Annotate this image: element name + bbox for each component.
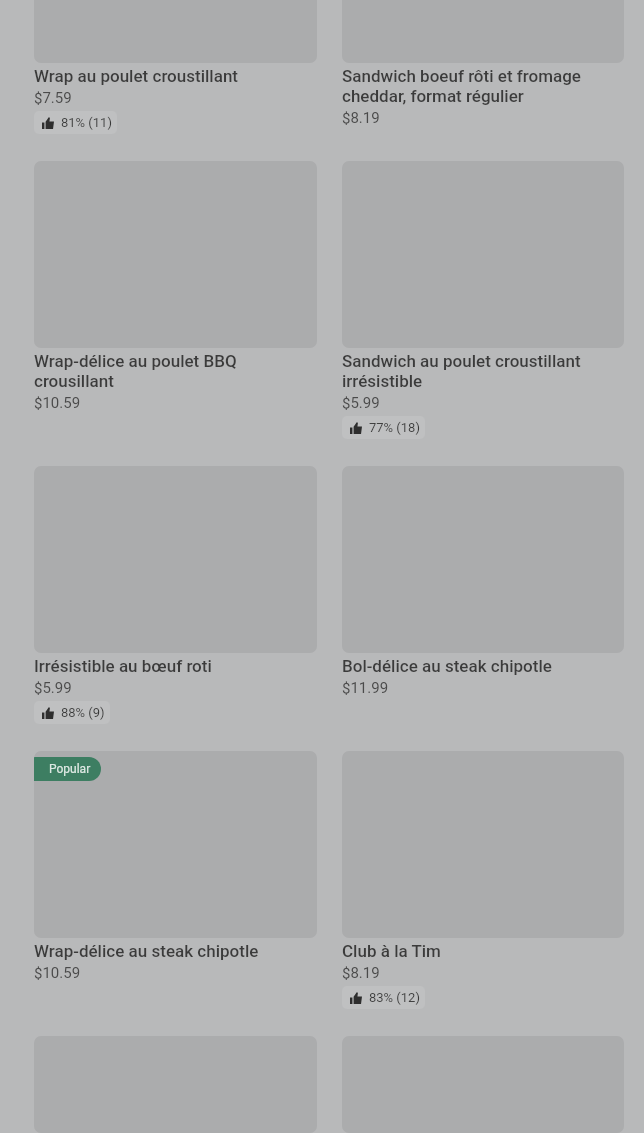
button[interactable]: 83% (12) — [342, 986, 425, 1009]
staticText: Club à la Tim — [342, 941, 441, 961]
staticText: $7.59 — [34, 89, 72, 107]
staticText: Sandwich au poulet croustillant irrésist… — [342, 351, 624, 391]
button[interactable]: Irrésistible au bœuf roti — [34, 466, 317, 724]
button[interactable]: Popular — [34, 757, 101, 781]
button[interactable]: 88% (9) — [34, 701, 110, 724]
staticText: Wrap-délice au poulet BBQ crousillant — [34, 351, 317, 391]
staticText: $10.59 — [34, 394, 81, 412]
button[interactable]: Wrap au poulet croustillant — [34, 0, 317, 134]
staticText: Popular — [49, 762, 91, 776]
staticText: Bol-délice au steak chipotle — [342, 656, 552, 676]
staticText: Irrésistible au bœuf roti — [34, 656, 212, 676]
button[interactable]: Sandwich boeuf rôti et fromage cheddar, … — [342, 0, 624, 127]
button[interactable]: Wrap-délice au poulet BBQ crousillant — [34, 161, 317, 412]
button[interactable]: Club à la Tim — [342, 751, 624, 1009]
button[interactable]: Sandwich au poulet croustillant irrésist… — [342, 161, 624, 439]
staticText: Sandwich boeuf rôti et fromage cheddar, … — [342, 66, 624, 106]
staticText: 81% (11) — [61, 115, 112, 130]
staticText: 77% (18) — [369, 420, 420, 435]
staticText: $8.19 — [342, 964, 380, 982]
button[interactable]: Bol-délice au steak chipotle — [342, 466, 624, 697]
staticText: 83% (12) — [369, 990, 420, 1005]
staticText: Wrap-délice au steak chipotle — [34, 941, 259, 961]
staticText: $11.99 — [342, 679, 389, 697]
staticText: $8.19 — [342, 109, 380, 127]
staticText: Wrap au poulet croustillant — [34, 66, 238, 86]
button[interactable]: 77% (18) — [342, 416, 425, 439]
staticText: $5.99 — [342, 394, 380, 412]
button[interactable]: 81% (11) — [34, 111, 117, 134]
staticText: $5.99 — [34, 679, 72, 697]
staticText: $10.59 — [34, 964, 81, 982]
button[interactable]: Popular — [34, 751, 317, 982]
staticText: 88% (9) — [61, 705, 105, 720]
